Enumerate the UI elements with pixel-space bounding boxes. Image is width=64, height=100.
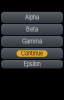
staticText: Continue xyxy=(21,50,43,57)
staticText: Epsilon xyxy=(23,61,40,68)
button[interactable]: Gamma xyxy=(1,36,63,47)
button[interactable]: Continue xyxy=(1,48,63,59)
staticText: Gamma xyxy=(22,38,42,45)
button[interactable]: Epsilon xyxy=(1,60,63,68)
button[interactable]: Beta xyxy=(1,24,63,35)
staticText: Alpha xyxy=(25,14,39,21)
staticText: Beta xyxy=(26,26,38,33)
button[interactable]: Alpha xyxy=(1,12,63,23)
